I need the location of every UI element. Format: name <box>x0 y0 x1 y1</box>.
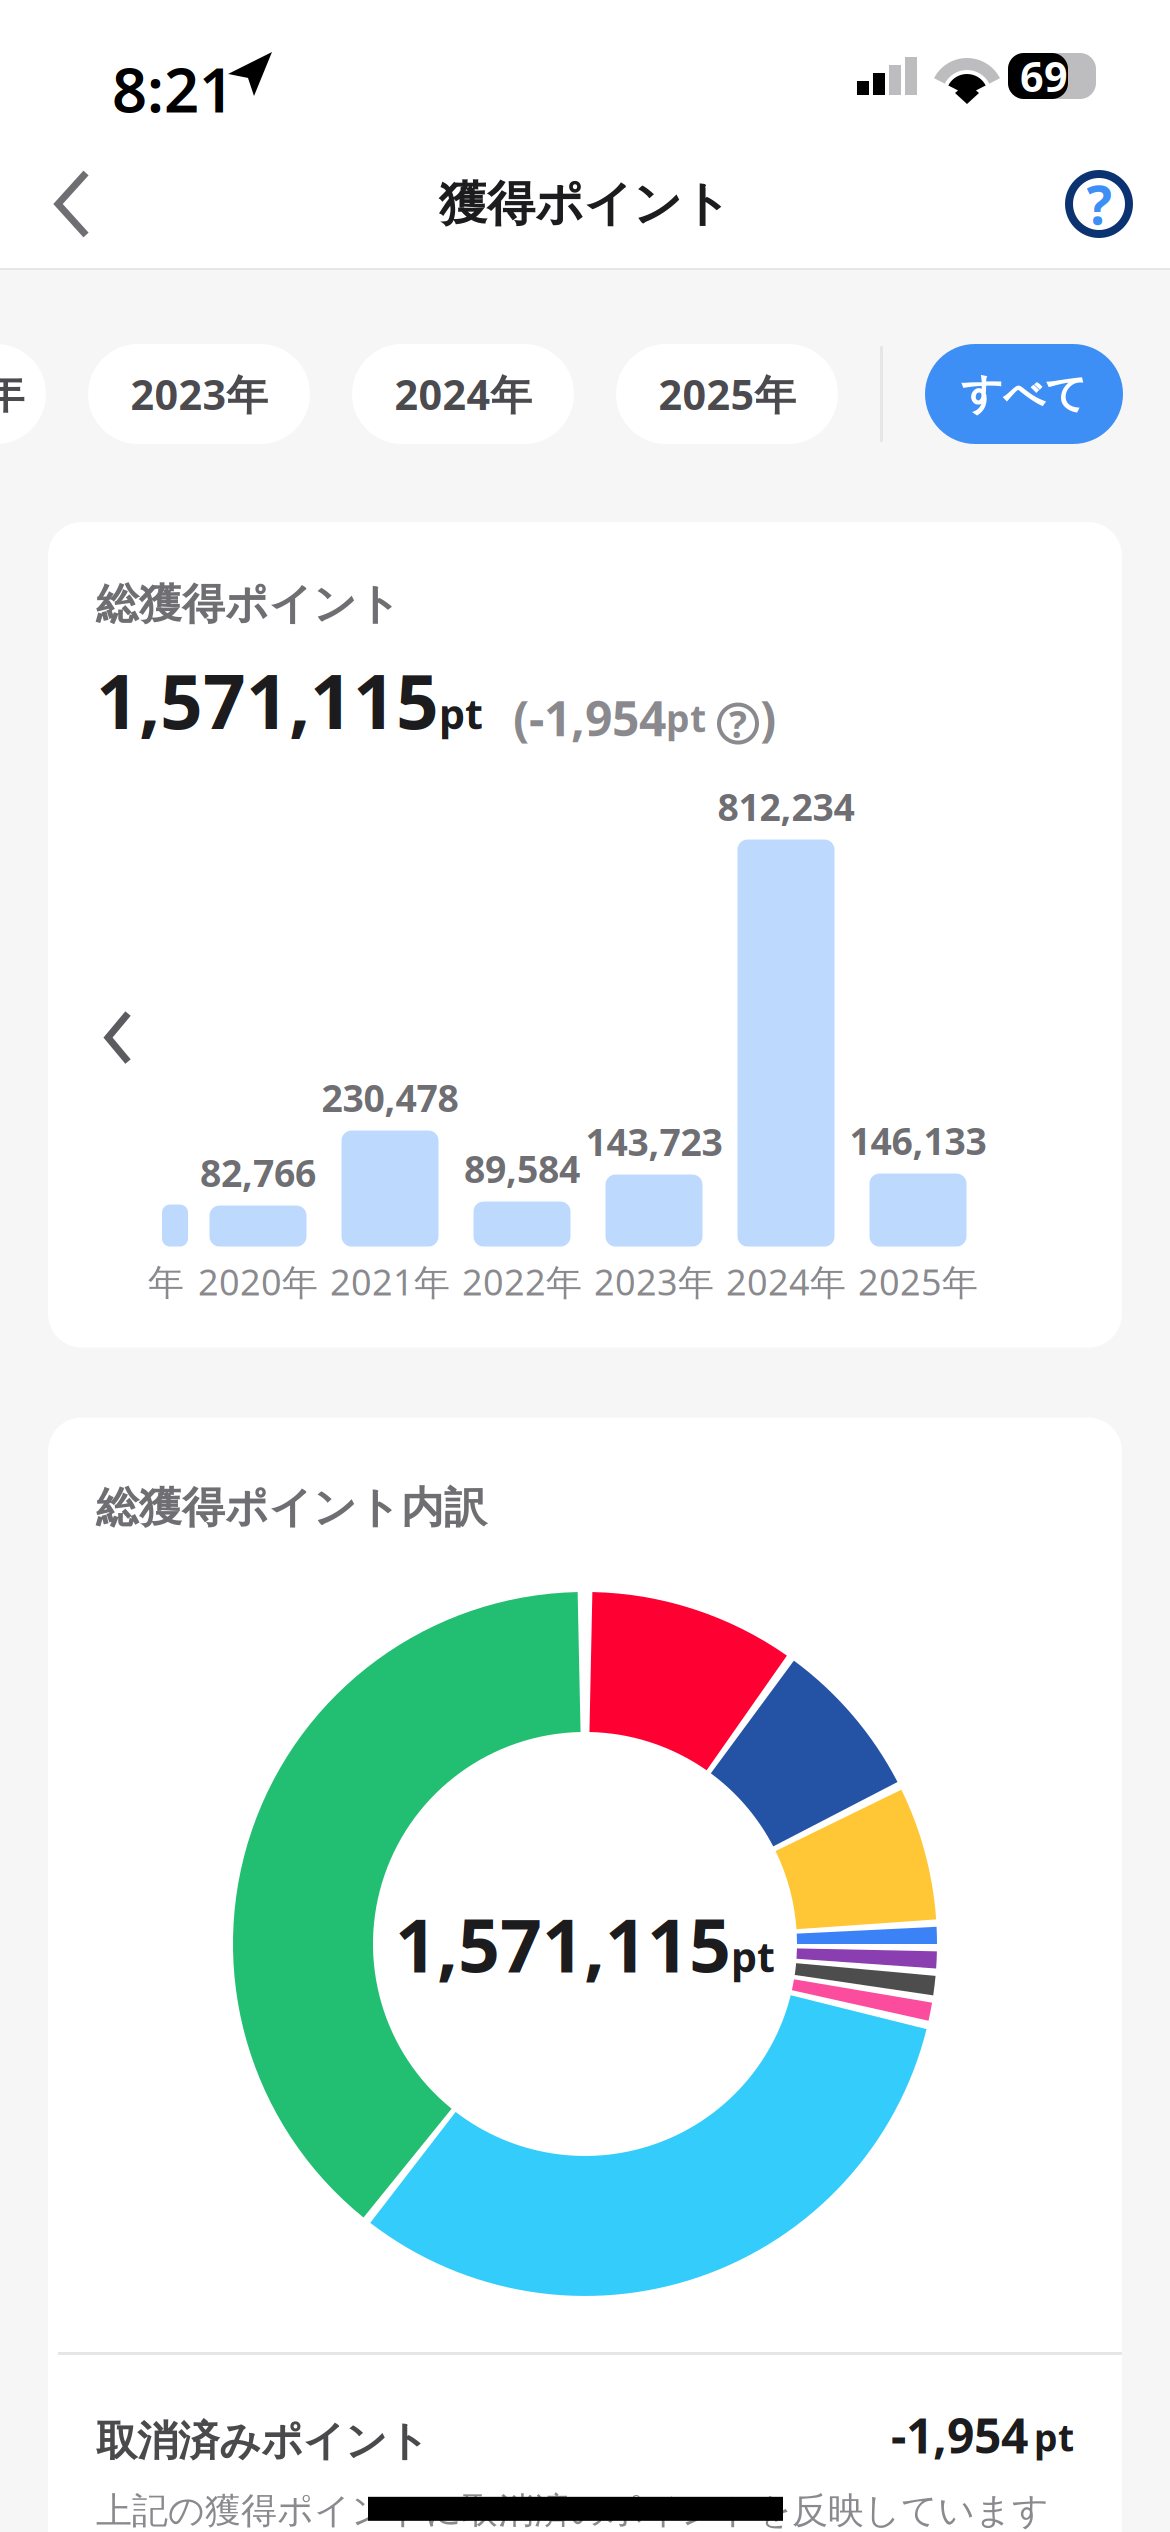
button[interactable]: すべて <box>925 344 1123 444</box>
staticText: 取消済みポイント <box>96 2416 429 2467</box>
staticText: 総獲得ポイント <box>96 578 401 630</box>
staticText: (-1,954 <box>513 686 666 749</box>
staticText: 230,478 <box>321 1073 458 1122</box>
button[interactable]: Help <box>1056 161 1142 247</box>
staticText: 2024年 <box>726 1258 846 1305</box>
button[interactable]: 2024年 <box>352 344 574 444</box>
staticText: 82,766 <box>200 1148 316 1197</box>
staticText: 年 <box>148 1261 184 1305</box>
staticText: 2021年 <box>330 1258 450 1305</box>
staticText: 143,723 <box>585 1117 722 1166</box>
staticText: ? <box>1086 169 1111 239</box>
staticText: 2020年 <box>198 1258 318 1305</box>
staticText: 89,584 <box>464 1144 580 1193</box>
button[interactable]: Back <box>26 141 122 267</box>
staticText: 上記の獲得ポイントに取消済のポイントを反映しています <box>96 2489 1049 2532</box>
staticText: 総獲得ポイント内訳 <box>96 1482 487 1534</box>
button[interactable]: 2025年 <box>616 344 838 444</box>
staticText: 獲得ポイント <box>439 174 731 233</box>
staticText: -1,954 <box>891 2403 1028 2467</box>
staticText: ) <box>760 686 776 749</box>
staticText: 2024年 <box>394 367 531 421</box>
staticText: pt <box>439 686 483 741</box>
staticText: 年 <box>0 369 24 419</box>
staticText: 2025年 <box>658 367 795 421</box>
staticText: 8:21 <box>112 48 234 129</box>
staticText: 2023年 <box>594 1258 714 1305</box>
button[interactable]: 2023年 <box>88 344 310 444</box>
staticText: 69 <box>1020 49 1068 103</box>
staticText: 2023年 <box>130 367 267 421</box>
button[interactable]: 取消済みポイント <box>48 2355 1122 2532</box>
staticText: pt <box>666 693 706 743</box>
staticText: すべて <box>961 369 1087 419</box>
staticText: ? <box>729 699 747 748</box>
staticText: 2025年 <box>858 1258 978 1305</box>
staticText: 1,571,115 <box>96 650 439 750</box>
staticText: 812,234 <box>717 782 854 831</box>
staticText: 2022年 <box>462 1258 582 1305</box>
staticText: 146,133 <box>849 1116 986 1165</box>
staticText: pt <box>731 1929 775 1984</box>
staticText: 1,571,115 <box>395 1895 731 1993</box>
staticText: pt <box>1034 2412 1074 2462</box>
button[interactable]: 年 <box>0 344 46 444</box>
